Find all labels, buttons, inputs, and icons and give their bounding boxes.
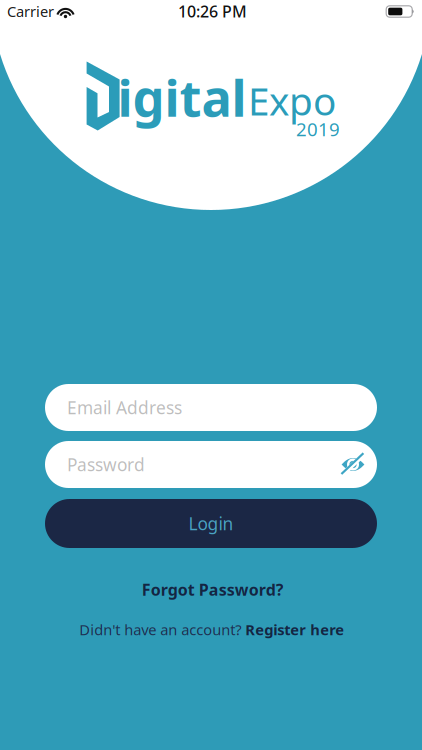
button[interactable]: Email Address: [45, 384, 377, 431]
staticText: Carrier: [7, 2, 54, 21]
staticText: Forgot Password?: [142, 579, 284, 600]
staticText: Expo: [248, 75, 336, 126]
staticText: igital: [117, 63, 246, 131]
staticText: Email Address: [67, 396, 182, 419]
staticText: 2019: [296, 117, 340, 141]
staticText: Login: [188, 512, 233, 535]
staticText: Password: [67, 453, 145, 476]
button[interactable]: Login: [45, 499, 377, 548]
button[interactable]: Password: [45, 441, 377, 488]
staticText: Didn't have an account?: [79, 620, 241, 639]
button[interactable]: Forgot Password?: [142, 579, 284, 600]
staticText: 10:26 PM: [178, 1, 247, 22]
staticText: Register here: [245, 620, 344, 639]
button[interactable]: Register here: [245, 620, 344, 639]
